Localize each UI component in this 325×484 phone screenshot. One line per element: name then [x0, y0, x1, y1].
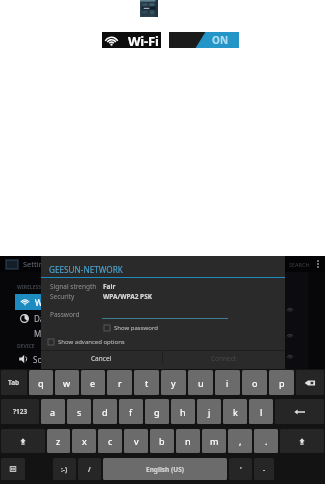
button[interactable]: f	[119, 399, 143, 424]
button[interactable]: s	[67, 399, 91, 424]
staticText: q	[38, 377, 44, 389]
button[interactable]: '	[229, 458, 252, 480]
button[interactable]: m	[202, 429, 226, 453]
button[interactable]: d	[93, 399, 117, 424]
button[interactable]: Delete	[296, 370, 324, 395]
staticText: n	[185, 435, 191, 447]
staticText: English (US)	[146, 465, 184, 474]
staticText: Connect	[211, 354, 237, 363]
button[interactable]: c	[98, 429, 122, 453]
staticText: Signal strength	[50, 282, 97, 291]
staticText: '	[240, 465, 242, 474]
button[interactable]: Tab	[1, 370, 27, 395]
button[interactable]: j	[197, 399, 221, 424]
button[interactable]: Screenshot thumbnail	[140, 0, 158, 17]
button[interactable]: x	[72, 429, 96, 453]
staticText: w	[63, 377, 71, 389]
staticText: u	[198, 377, 204, 389]
staticText: :-)	[61, 465, 68, 474]
staticText: More	[34, 328, 54, 339]
button[interactable]: n	[176, 429, 200, 453]
staticText: b	[159, 435, 165, 447]
staticText: WPA/WPA2 PSK	[103, 292, 153, 301]
staticText: GEESUN-NETWORK	[49, 264, 123, 275]
button[interactable]: w	[55, 370, 79, 395]
staticText: j	[208, 406, 211, 418]
staticText: d	[102, 406, 108, 418]
button[interactable]: Cancel	[41, 351, 162, 369]
staticText: Wi-Fi	[128, 32, 159, 48]
button[interactable]: Enter	[275, 399, 324, 424]
button[interactable]: ?123	[1, 399, 39, 424]
button[interactable]: p	[269, 370, 294, 395]
staticText: z	[56, 435, 61, 447]
staticText: /	[88, 465, 91, 474]
staticText: -	[263, 465, 266, 474]
button[interactable]: Wi-Fi	[15, 294, 133, 310]
staticText: Security	[50, 292, 75, 301]
button[interactable]: g	[145, 399, 169, 424]
staticText: Wi-Fi	[35, 297, 54, 308]
staticText: ,	[239, 435, 242, 447]
button[interactable]: k	[223, 399, 247, 424]
staticText: k	[233, 406, 238, 418]
staticText: Settings	[23, 259, 52, 269]
button[interactable]: -	[254, 458, 274, 480]
button[interactable]: t	[134, 370, 159, 395]
button[interactable]: u	[188, 370, 213, 395]
staticText: y	[171, 377, 176, 389]
button[interactable]: i	[215, 370, 240, 395]
button[interactable]: b	[150, 429, 174, 453]
button[interactable]: l	[249, 399, 273, 424]
button[interactable]: y	[161, 370, 186, 395]
button[interactable]: q	[29, 370, 53, 395]
button[interactable]: Sound	[19, 352, 58, 366]
button[interactable]: Wi-Fi	[102, 32, 161, 48]
staticText: Tab	[8, 378, 20, 387]
staticText: Data usage	[34, 313, 77, 324]
button[interactable]: e	[81, 370, 105, 395]
staticText: v	[134, 435, 139, 447]
staticText: Fair	[103, 282, 116, 291]
button[interactable]: .	[254, 429, 278, 453]
button[interactable]: More	[34, 326, 54, 340]
button[interactable]: /	[78, 458, 101, 480]
button[interactable]: z	[47, 429, 70, 453]
button[interactable]: Show password	[104, 323, 158, 333]
button[interactable]: v	[124, 429, 148, 453]
staticText: c	[108, 435, 113, 447]
staticText: s	[77, 406, 82, 418]
button[interactable]: Wi-Fi on	[169, 32, 239, 48]
staticText: t	[145, 377, 149, 389]
staticText: ?123	[13, 407, 28, 416]
button[interactable]: English (US)	[103, 458, 227, 480]
staticText: p	[279, 377, 285, 389]
button[interactable]: ,	[228, 429, 252, 453]
staticText: Password	[50, 310, 80, 319]
button[interactable]: r	[107, 370, 132, 395]
staticText: SEARCH	[289, 261, 310, 268]
staticText: g	[154, 406, 160, 418]
staticText: Show advanced options	[58, 338, 125, 346]
button[interactable]: Data usage	[20, 311, 77, 325]
button[interactable]: Change keyboard	[1, 458, 25, 480]
staticText: a	[50, 406, 56, 418]
staticText: ON	[212, 33, 229, 47]
staticText: m	[210, 435, 219, 447]
staticText: WIRELESS & NETWORKS	[17, 284, 76, 291]
button[interactable]: Shift	[1, 429, 45, 453]
button[interactable]: Shift	[280, 429, 324, 453]
staticText: o	[252, 377, 258, 389]
button[interactable]: h	[171, 399, 195, 424]
button[interactable]: o	[242, 370, 267, 395]
staticText: Sound	[33, 354, 58, 365]
staticText: Show password	[114, 324, 158, 332]
button[interactable]: a	[41, 399, 65, 424]
staticText: f	[129, 406, 133, 418]
staticText: h	[180, 406, 186, 418]
staticText: Cancel	[91, 354, 112, 363]
staticText: .	[265, 435, 268, 447]
button[interactable]: Show advanced options	[48, 337, 125, 347]
button[interactable]: :-)	[53, 458, 76, 480]
